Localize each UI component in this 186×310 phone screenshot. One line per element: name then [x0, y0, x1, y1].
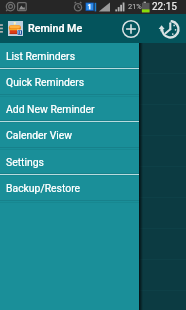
button[interactable]: Add New Reminder: [0, 96, 139, 122]
staticText: Backup/Restore: [6, 182, 81, 194]
button[interactable]: Backup/Restore: [0, 175, 139, 201]
button[interactable]: Add reminder: [120, 14, 142, 43]
staticText: Quick Reminders: [6, 76, 85, 88]
staticText: Add New Reminder: [6, 103, 95, 115]
button[interactable]: Settings: [0, 149, 139, 175]
staticText: 22:15: [152, 1, 177, 13]
button[interactable]: Reminder history: [156, 14, 180, 43]
staticText: Remind Me: [28, 22, 83, 35]
staticText: Calender View: [6, 129, 73, 141]
staticText: Settings: [6, 156, 44, 168]
button[interactable]: Calender View: [0, 122, 139, 148]
staticText: 21%: [128, 2, 142, 11]
button[interactable]: Quick Reminders: [0, 69, 139, 95]
button[interactable]: List Reminders: [0, 43, 139, 69]
staticText: List Reminders: [6, 50, 76, 62]
button[interactable]: Open navigation drawer: [0, 14, 4, 43]
